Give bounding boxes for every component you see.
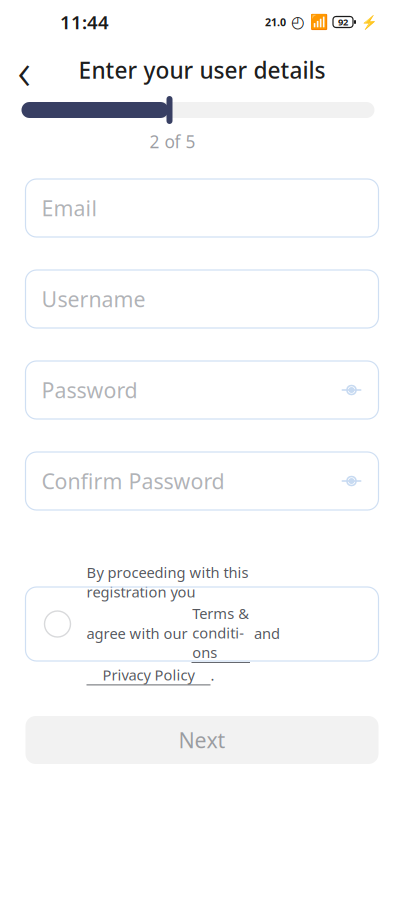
staticText: 92 xyxy=(338,16,348,28)
staticText: ⚡ xyxy=(361,14,378,30)
button[interactable]: Next xyxy=(25,716,378,764)
button[interactable]: Email xyxy=(25,179,378,237)
staticText: agree with our xyxy=(86,624,191,643)
staticText: Terms & conditions xyxy=(192,604,249,662)
staticText: 2 of 5 xyxy=(149,130,195,153)
staticText: . xyxy=(210,665,214,685)
staticText: Next xyxy=(178,726,225,754)
staticText: Privacy Policy xyxy=(102,665,194,684)
staticText: Enter your user details xyxy=(78,55,325,85)
staticText: 11:44 xyxy=(60,10,109,34)
button[interactable]: Confirm Password xyxy=(25,452,378,510)
staticText: ‹ xyxy=(17,36,30,104)
button[interactable]: Password xyxy=(25,361,378,419)
button[interactable]: Back xyxy=(0,46,48,94)
staticText: 21.0 xyxy=(265,15,286,29)
staticText: Username xyxy=(41,285,145,313)
staticText: By proceeding with this registration you xyxy=(86,563,248,602)
button[interactable]: Username xyxy=(25,270,378,328)
staticText: Confirm Password xyxy=(41,467,224,495)
staticText: and xyxy=(250,624,280,643)
staticText: Password xyxy=(41,376,137,404)
staticText: ◴ xyxy=(291,13,305,31)
staticText: Email xyxy=(41,194,97,222)
staticText: 📶 xyxy=(310,14,328,30)
button[interactable]: By proceeding with this registration you xyxy=(25,587,378,661)
